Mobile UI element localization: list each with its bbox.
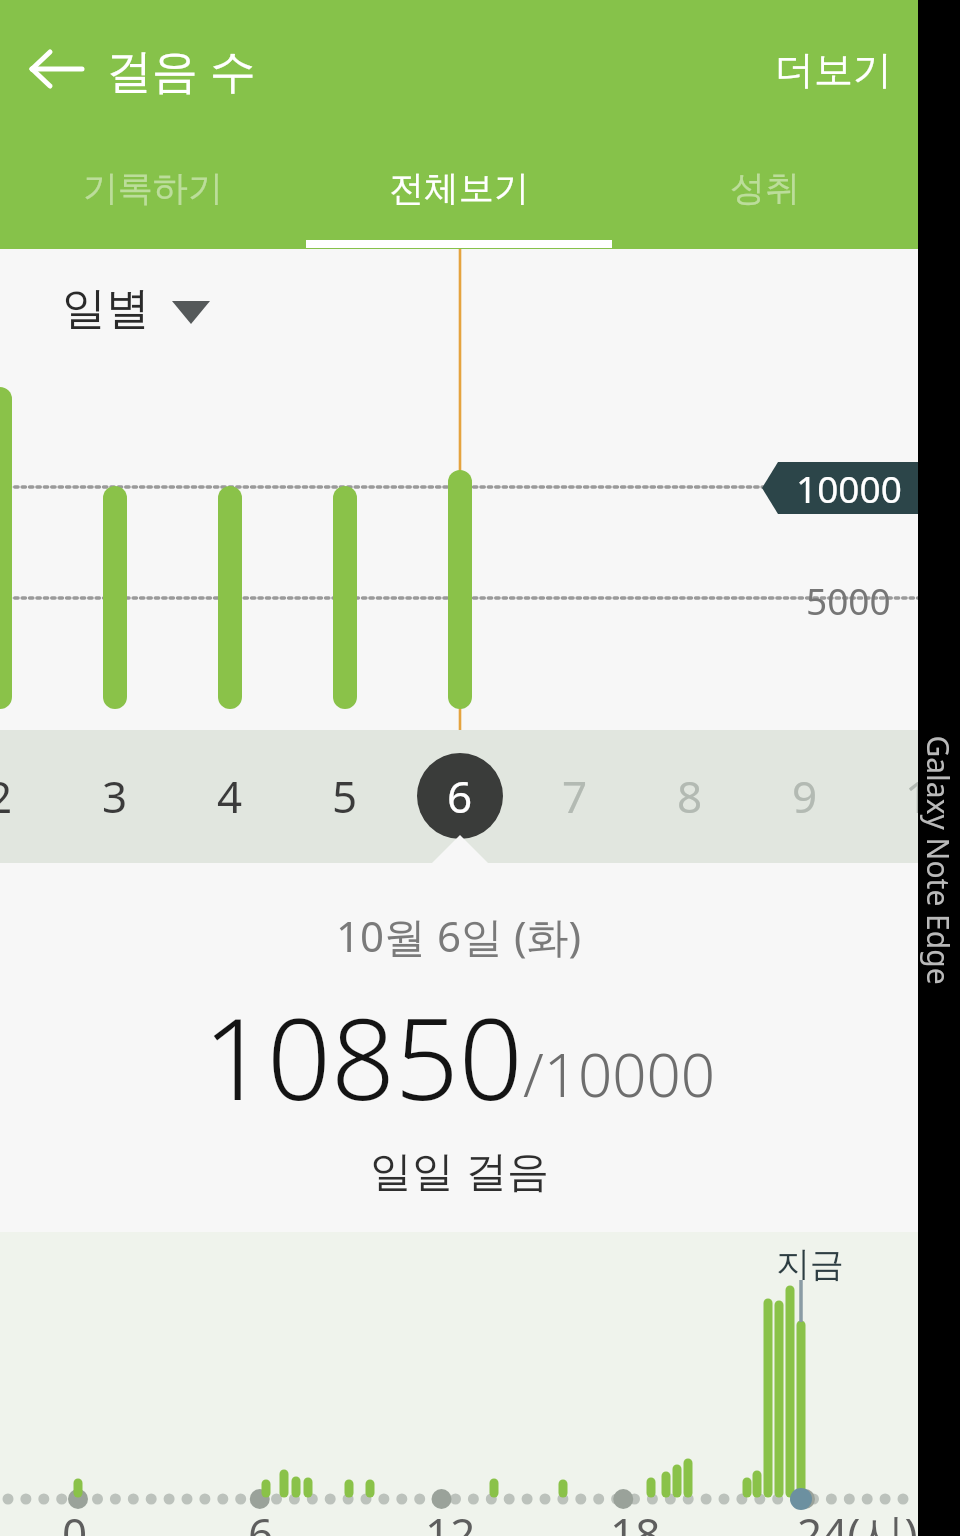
staticText: 6 bbox=[447, 766, 473, 826]
staticText: 10850 bbox=[203, 980, 523, 1133]
staticText: 10000 bbox=[796, 463, 902, 513]
staticText: 일별 bbox=[62, 281, 150, 336]
button[interactable]: 2 bbox=[0, 752, 50, 840]
staticText: 6 bbox=[248, 1503, 274, 1536]
staticText: 지금 bbox=[776, 1243, 844, 1286]
staticText: 0 bbox=[62, 1503, 88, 1536]
staticText: 10월 6일 (화) bbox=[336, 907, 582, 964]
staticText: /10000 bbox=[523, 1033, 716, 1115]
button[interactable]: 7 bbox=[525, 752, 625, 840]
button[interactable]: 9 bbox=[755, 752, 855, 840]
staticText: 5000 bbox=[806, 575, 891, 625]
button[interactable]: Back bbox=[14, 27, 98, 111]
staticText: 5 bbox=[332, 766, 358, 826]
button[interactable]: 3 bbox=[65, 752, 165, 840]
staticText: 성취 bbox=[730, 166, 800, 210]
button[interactable]: 전체보기 bbox=[306, 138, 612, 249]
staticText: 7 bbox=[562, 766, 588, 826]
staticText: Galaxy Note Edge bbox=[918, 735, 959, 985]
staticText: 전체보기 bbox=[389, 166, 529, 210]
staticText: 일일 걸음 bbox=[370, 1141, 549, 1198]
button[interactable]: 5 bbox=[295, 752, 395, 840]
staticText: 1 bbox=[905, 766, 918, 826]
staticText: 24(시) bbox=[797, 1503, 918, 1536]
staticText: 8 bbox=[677, 766, 703, 826]
staticText: 더보기 bbox=[775, 45, 892, 94]
staticText: 걸음 수 bbox=[106, 38, 256, 101]
staticText: 2 bbox=[0, 766, 13, 826]
button[interactable]: 일별 bbox=[50, 269, 222, 348]
staticText: 기록하기 bbox=[83, 166, 223, 210]
button[interactable]: 기록하기 bbox=[0, 138, 306, 249]
staticText: 4 bbox=[217, 766, 243, 826]
button[interactable]: 6 bbox=[410, 752, 510, 840]
staticText: 3 bbox=[102, 766, 128, 826]
staticText: 12 bbox=[425, 1503, 476, 1536]
button[interactable]: 더보기 bbox=[759, 45, 918, 94]
staticText: 18 bbox=[610, 1503, 661, 1536]
button[interactable]: 1 bbox=[868, 752, 918, 840]
button[interactable]: 성취 bbox=[612, 138, 918, 249]
staticText: 9 bbox=[792, 766, 818, 826]
button[interactable]: 4 bbox=[180, 752, 280, 840]
button[interactable]: 8 bbox=[640, 752, 740, 840]
